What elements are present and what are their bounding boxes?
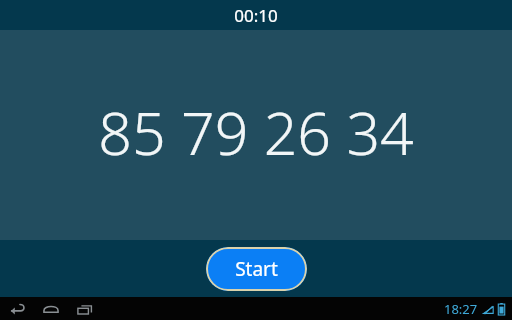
button[interactable]: Home (41, 299, 61, 319)
button[interactable]: Back (8, 299, 28, 319)
staticText: 18:27 (444, 300, 478, 318)
staticText: 85 79 26 34 (98, 92, 414, 172)
button[interactable]: Start (206, 247, 307, 291)
staticText: Start (235, 256, 278, 282)
button[interactable]: Recent apps (74, 299, 94, 319)
staticText: 00:10 (234, 4, 278, 27)
